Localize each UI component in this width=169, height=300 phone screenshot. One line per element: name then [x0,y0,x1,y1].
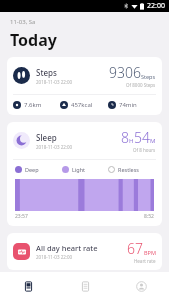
staticText: Heart rate [134,258,156,264]
staticText: 67 [127,239,143,258]
staticText: 7.6km [24,101,42,109]
staticText: 74min [119,101,137,109]
button[interactable]: Sleep [7,122,162,226]
staticText: Sleep [36,132,57,143]
button[interactable]: Steps [7,57,162,115]
staticText: Deep [25,166,39,173]
staticText: All day heart rate [36,243,98,253]
staticText: Light [72,166,86,173]
staticText: 22:00 [147,1,165,11]
staticText: 8:52 [144,213,154,220]
staticText: 23:57 [15,213,28,220]
staticText: 2018-11-03 22:00 [36,144,73,150]
button[interactable]: List [57,272,113,300]
staticText: H [129,137,134,145]
staticText: 457kcal [71,101,93,109]
staticText: 2018-11-03 22:00 [36,79,73,85]
staticText: Of 8000 Steps [126,82,156,88]
staticText: 9306 [109,63,141,82]
staticText: Today [10,29,57,51]
staticText: 54 [134,128,150,147]
staticText: Of 8 hours [133,147,156,153]
button[interactable]: Profile [113,272,169,300]
staticText: M [150,137,156,145]
staticText: 8 [121,128,129,147]
staticText: 11-03, Sa [10,18,36,26]
button[interactable]: Status [0,272,57,300]
staticText: Steps [141,73,156,80]
staticText: BPM [144,249,156,256]
staticText: Restless [118,166,139,173]
staticText: 2018-11-03 22:00 [36,254,73,260]
button[interactable]: All day heart rate [7,233,162,270]
staticText: Steps [36,67,57,78]
